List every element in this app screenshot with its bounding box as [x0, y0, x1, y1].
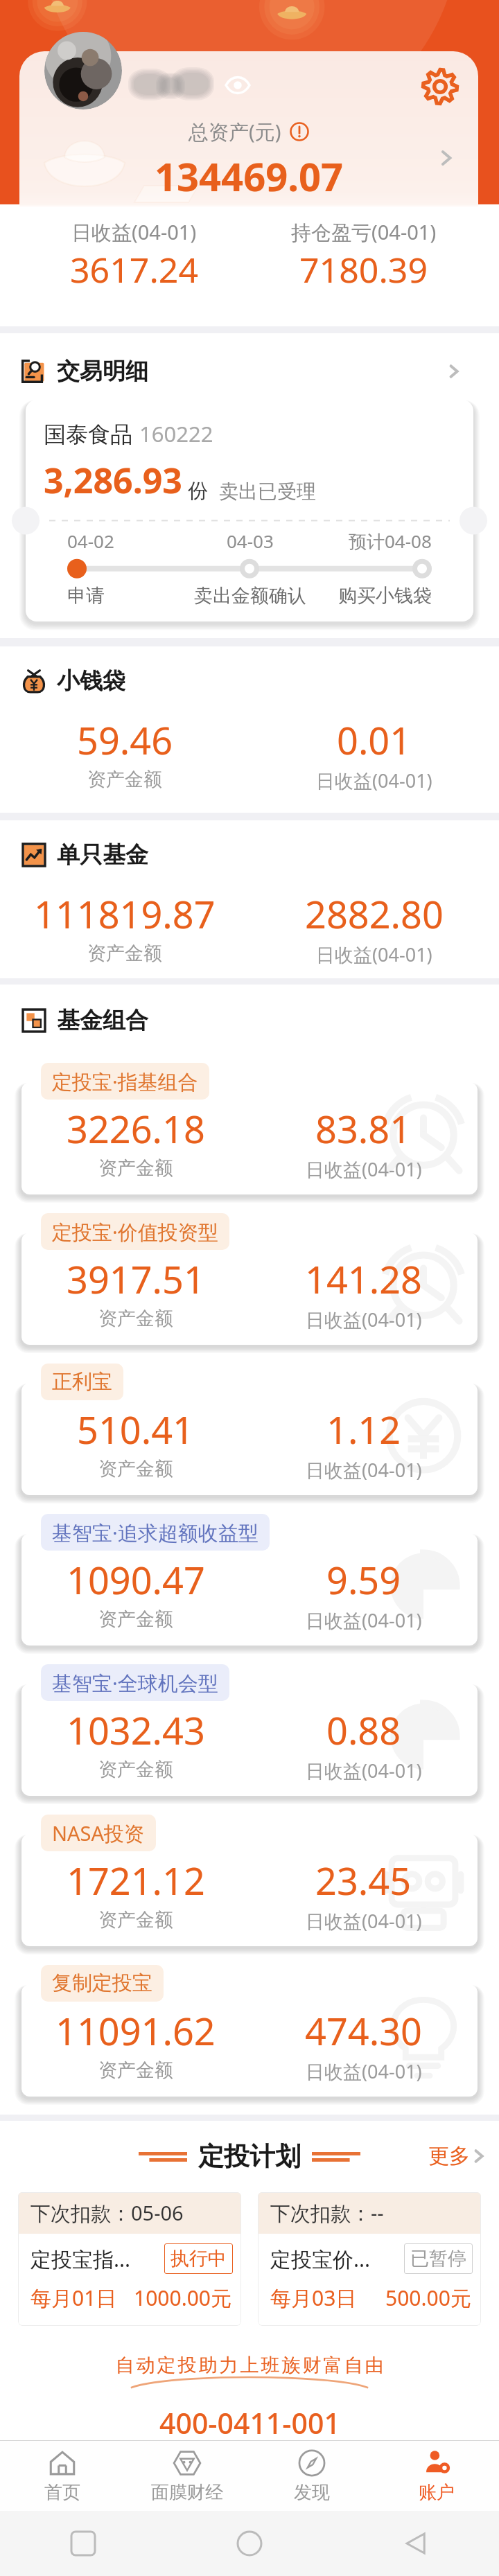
button[interactable]: 1721.12	[21, 1834, 478, 1946]
staticText: 0.88	[326, 1704, 401, 1756]
button[interactable]: Toggle amount visibility	[222, 70, 253, 100]
staticText: 日收益(04-01)	[306, 1457, 422, 1483]
staticText: 持仓盈亏(04-01)	[291, 218, 437, 246]
staticText: 基智宝·全球机会型	[52, 1669, 218, 1697]
staticText: 资产金额	[98, 1156, 173, 1180]
staticText: 日收益(04-01)	[71, 218, 197, 246]
button[interactable]: 持仓盈亏(04-01)	[249, 218, 478, 293]
staticText: 交易明细	[57, 357, 148, 386]
staticText: 定投宝指...	[30, 2245, 131, 2273]
button[interactable]: 小钱袋	[0, 655, 499, 707]
button[interactable]: Asset details	[427, 139, 466, 177]
staticText: 定投宝·价值投资型	[52, 1218, 218, 1246]
staticText: 预计04-08	[349, 529, 432, 554]
button[interactable]: 正利宝	[41, 1364, 123, 1400]
button[interactable]: 单只基金	[0, 829, 499, 881]
button[interactable]: 1090.47	[21, 1533, 478, 1646]
button[interactable]: 定投宝·价值投资型	[41, 1213, 229, 1250]
staticText: 基智宝·追求超额收益型	[52, 1519, 259, 1546]
button[interactable]: Profile avatar	[44, 32, 122, 109]
staticText: 9.59	[326, 1554, 401, 1605]
staticText: 份	[188, 478, 208, 504]
staticText: 已暂停	[410, 2247, 466, 2270]
button[interactable]: 首页	[0, 2441, 125, 2511]
staticText: 日收益(04-01)	[316, 942, 432, 967]
staticText: 1.12	[326, 1404, 401, 1455]
staticText: 111819.87	[34, 888, 216, 939]
button[interactable]: 面膜财经	[125, 2441, 249, 2511]
staticText: 申请	[67, 584, 105, 608]
staticText: 资产金额	[87, 942, 162, 965]
staticText: 3917.51	[67, 1253, 205, 1305]
staticText: 基金组合	[57, 1006, 148, 1035]
button[interactable]: 510.41	[21, 1383, 478, 1495]
staticText: 资产金额	[98, 1758, 173, 1781]
staticText: 执行中	[170, 2247, 227, 2270]
button[interactable]: 基金组合	[0, 994, 499, 1047]
button[interactable]: 基智宝·全球机会型	[41, 1664, 229, 1701]
staticText: 卖出金额确认	[194, 584, 306, 608]
staticText: 1032.43	[67, 1704, 205, 1756]
staticText: 账户	[419, 2481, 455, 2504]
button[interactable]: Settings	[419, 65, 462, 108]
staticText: 资产金额	[98, 1307, 173, 1330]
button[interactable]: 下次扣款：05-06	[18, 2192, 241, 2326]
button[interactable]: 日收益(04-01)	[19, 218, 249, 293]
staticText: 1721.12	[67, 1855, 205, 1906]
staticText: 04-02	[67, 529, 114, 553]
staticText: 发现	[294, 2481, 330, 2504]
button[interactable]: 3917.51	[21, 1233, 478, 1345]
button[interactable]: 11091.62	[21, 1984, 478, 2097]
staticText: 3226.18	[67, 1103, 205, 1154]
staticText: 474.30	[305, 2005, 422, 2056]
staticText: 0.01	[337, 714, 412, 766]
button[interactable]: 账户	[374, 2441, 499, 2511]
staticText: 2882.80	[305, 888, 444, 939]
button[interactable]: 复制定投宝	[41, 1965, 164, 2002]
staticText: 3,286.93	[44, 457, 182, 504]
staticText: 复制定投宝	[52, 1970, 152, 1996]
button[interactable]: 3226.18	[21, 1082, 478, 1194]
staticText: 日收益(04-01)	[306, 2058, 422, 2084]
staticText: 每月03日	[270, 2284, 357, 2312]
staticText: 资产金额	[98, 1607, 173, 1631]
staticText: 04-03	[227, 529, 274, 553]
staticText: 下次扣款：--	[270, 2199, 384, 2227]
staticText: 400-0411-001	[159, 2403, 340, 2440]
staticText: 160222	[139, 419, 213, 448]
staticText: 面膜财经	[151, 2481, 223, 2504]
button[interactable]: 基智宝·追求超额收益型	[41, 1514, 270, 1551]
staticText: 资产金额	[98, 2058, 173, 2082]
staticText: 日收益(04-01)	[306, 1607, 422, 1633]
staticText: 自动定投助力上班族财富自由	[114, 2354, 385, 2377]
staticText: 日收益(04-01)	[306, 1758, 422, 1783]
staticText: 定投宝价...	[270, 2245, 371, 2273]
staticText: 3617.24	[70, 246, 198, 293]
staticText: 500.00元	[385, 2284, 471, 2312]
staticText: 日收益(04-01)	[316, 768, 432, 793]
staticText: 11091.62	[55, 2005, 216, 2056]
staticText: 下次扣款：05-06	[30, 2199, 184, 2227]
button[interactable]: 定投宝·指基组合	[41, 1063, 209, 1100]
staticText: 134469.07	[155, 150, 343, 202]
staticText: 更多	[428, 2143, 470, 2169]
staticText: 资产金额	[87, 768, 162, 791]
staticText: 141.28	[305, 1253, 422, 1305]
staticText: 59.46	[77, 714, 173, 766]
button[interactable]: 1032.43	[21, 1684, 478, 1796]
staticText: 总资产(元)	[189, 118, 281, 145]
staticText: 每月01日	[30, 2284, 117, 2312]
staticText: 正利宝	[52, 1369, 112, 1395]
button[interactable]: 交易明细	[0, 345, 499, 398]
staticText: 日收益(04-01)	[306, 1908, 422, 1934]
staticText: 定投宝·指基组合	[52, 1068, 198, 1095]
button[interactable]: 更多	[428, 2143, 499, 2169]
button[interactable]: 发现	[249, 2441, 374, 2511]
staticText: 7180.39	[299, 246, 428, 293]
button[interactable]: NASA投资	[41, 1815, 156, 1851]
button[interactable]: 下次扣款：--	[258, 2192, 481, 2326]
staticText: 卖出已受理	[219, 479, 316, 504]
staticText: 首页	[44, 2481, 80, 2504]
button[interactable]: 国泰食品	[26, 400, 473, 621]
staticText: 定投计划	[198, 2140, 301, 2173]
